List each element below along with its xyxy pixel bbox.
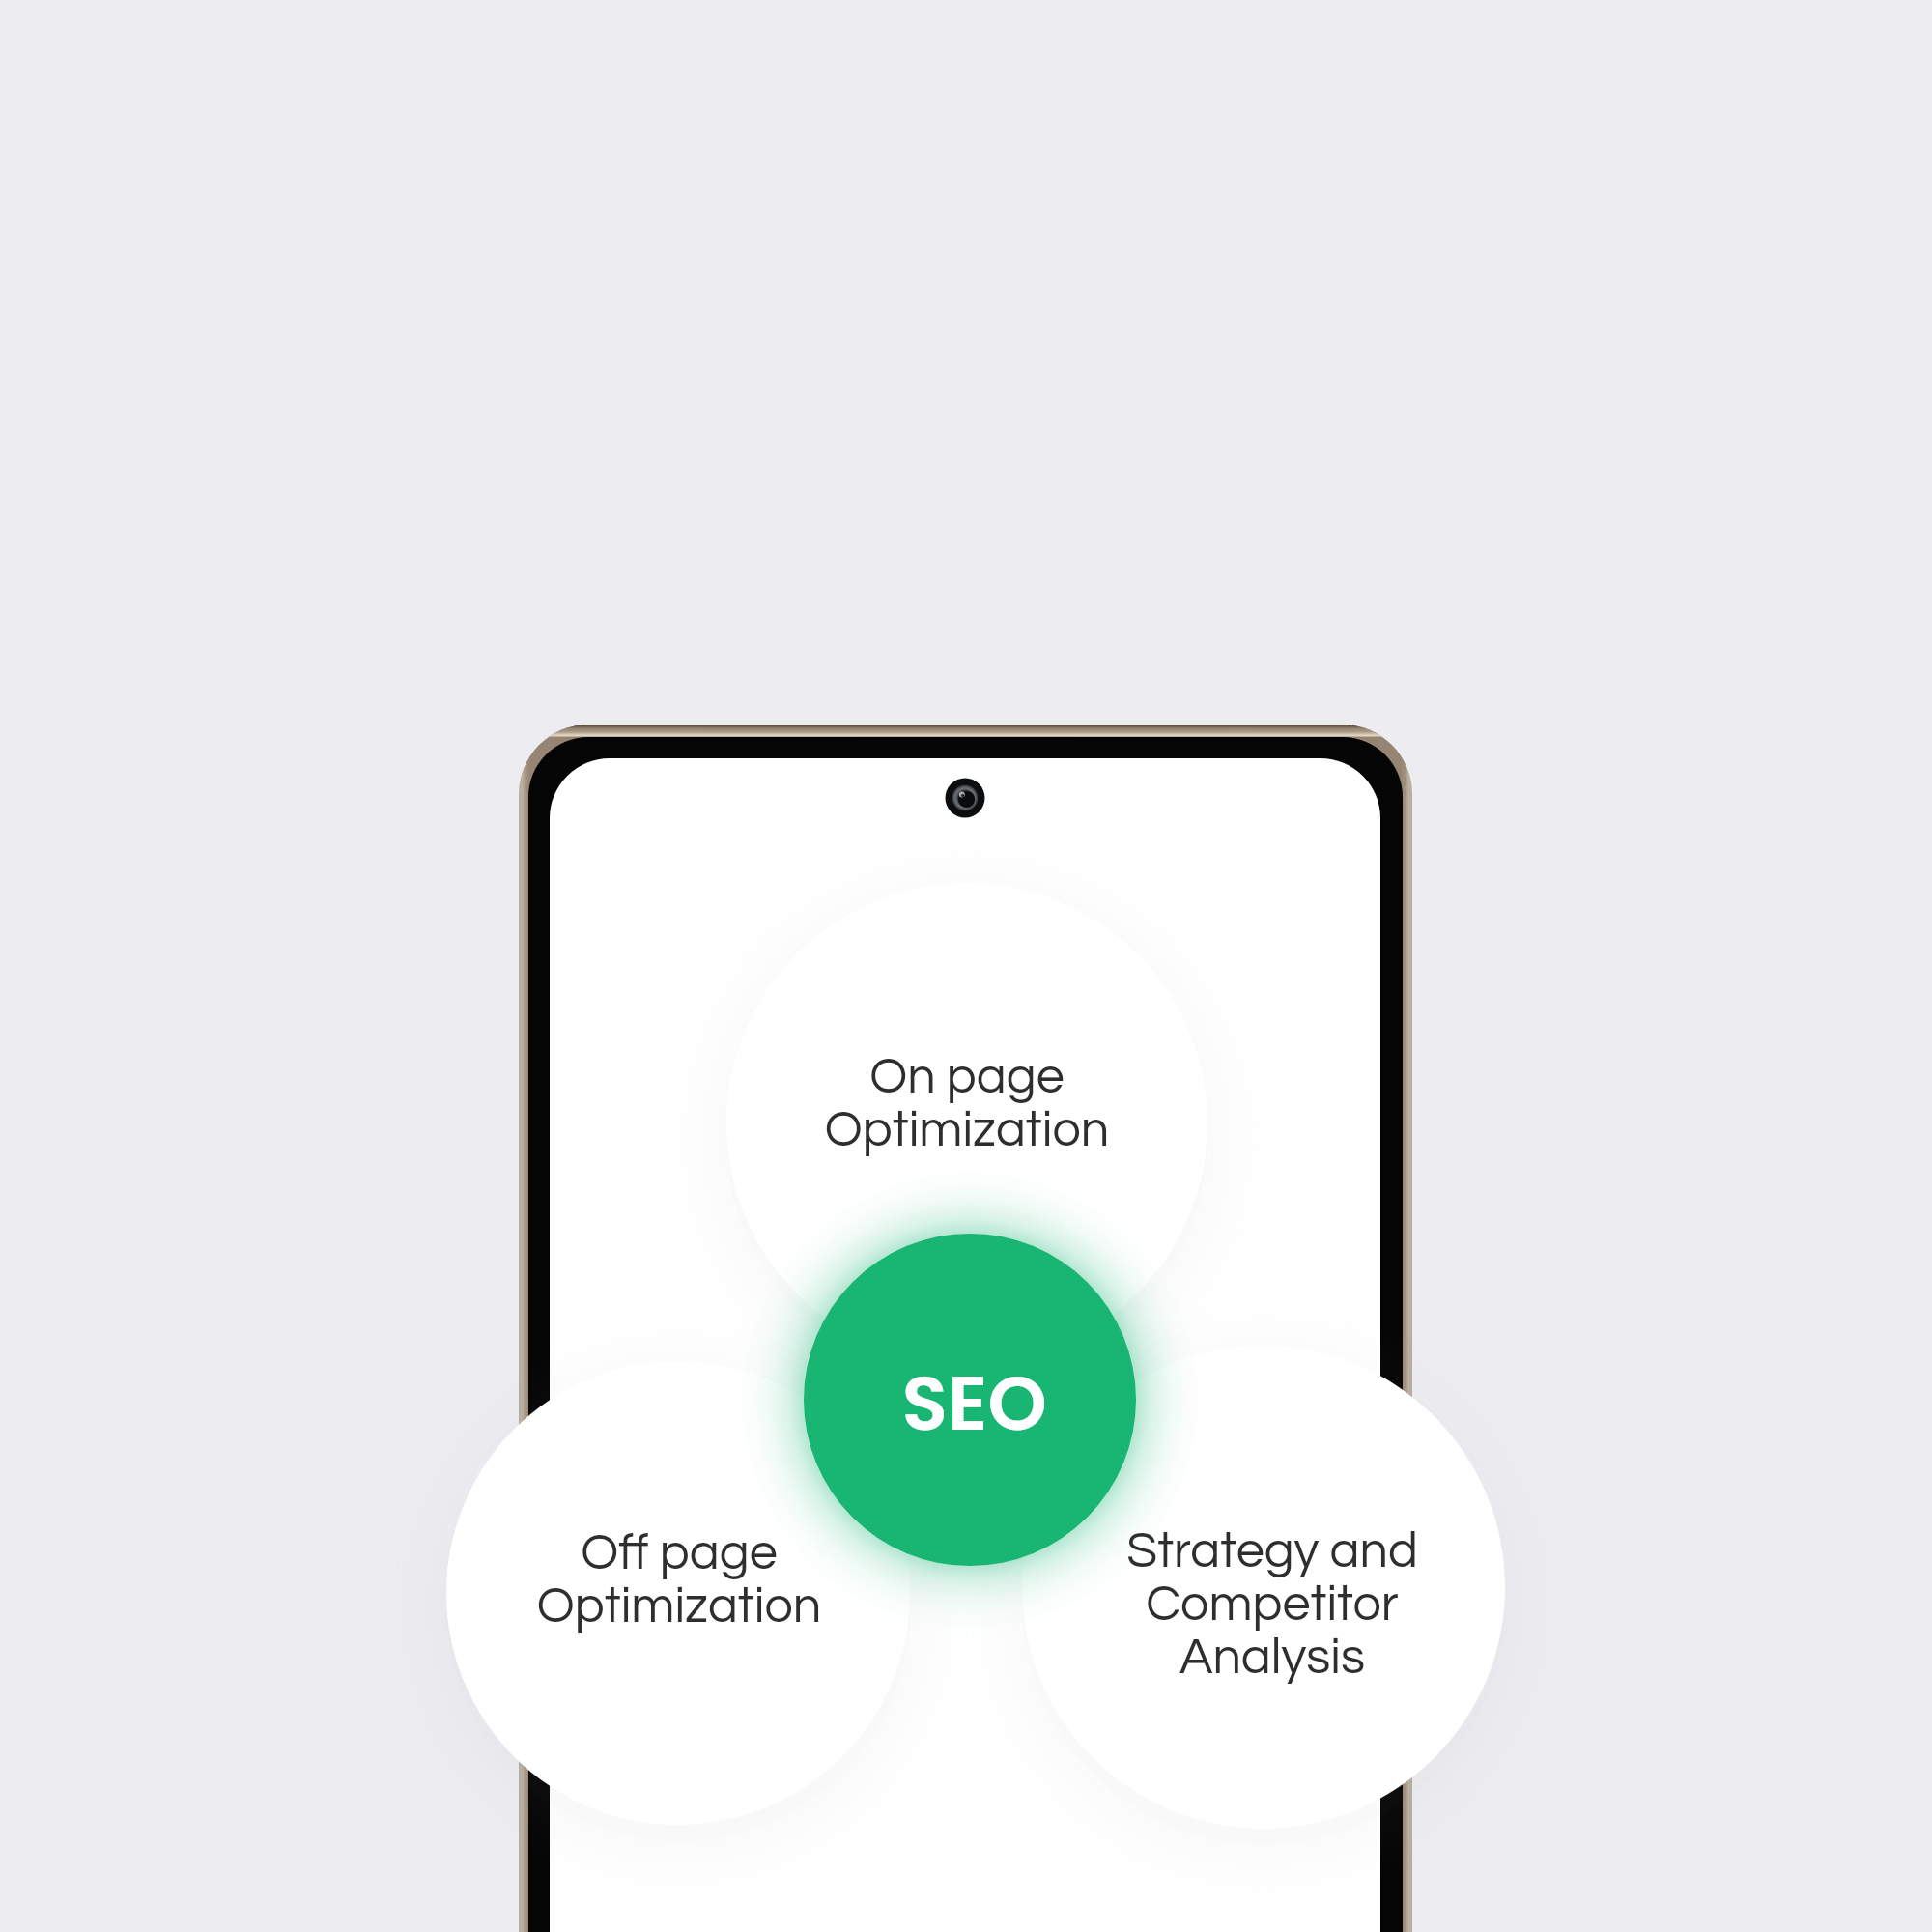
button[interactable]: SEO bbox=[804, 1234, 1136, 1566]
button[interactable]: Strategy and Competitor Analysis bbox=[963, 1525, 1581, 1684]
staticText: Off page Optimization bbox=[370, 1527, 988, 1633]
button[interactable]: Off page Optimization bbox=[370, 1527, 988, 1633]
button[interactable]: On page Optimization bbox=[658, 1051, 1276, 1156]
staticText: Strategy and Competitor Analysis bbox=[963, 1525, 1581, 1684]
staticText: SEO bbox=[901, 1350, 1047, 1456]
staticText: On page Optimization bbox=[658, 1051, 1276, 1156]
